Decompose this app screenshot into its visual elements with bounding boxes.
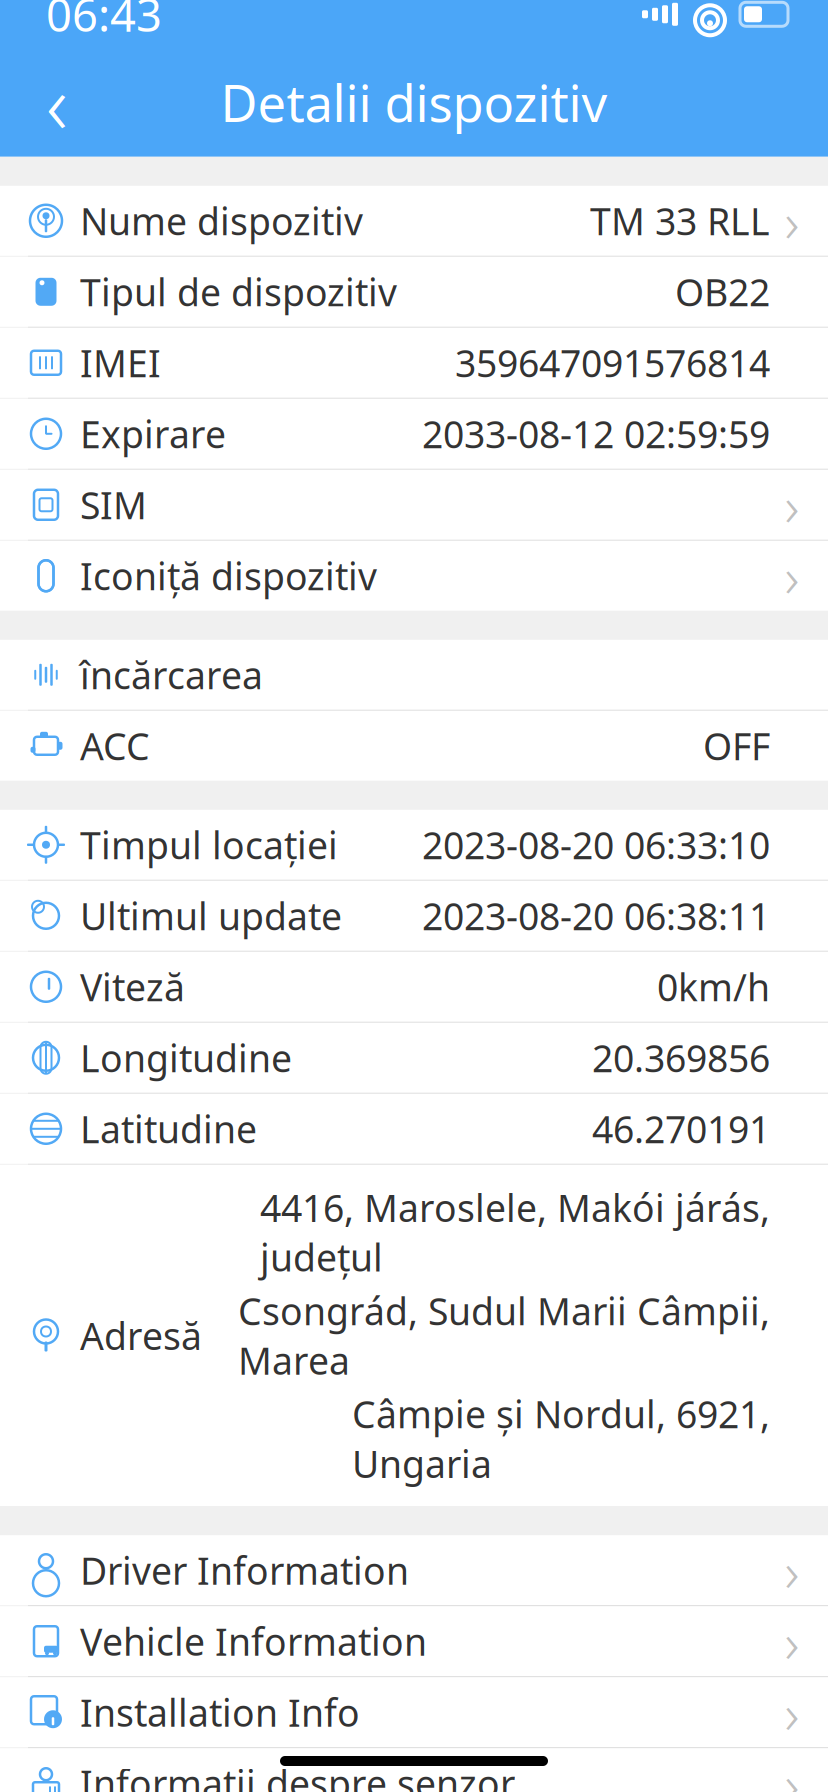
staticText: încărcarea — [80, 650, 263, 700]
button[interactable]: SIM — [0, 470, 828, 540]
staticText: 4416, Maroslele, Makói járás, județul — [260, 1183, 770, 1282]
staticText: Viteză — [80, 962, 185, 1012]
staticText: 2033-08-12 02:59:59 — [422, 409, 770, 459]
button[interactable]: Latitudine — [0, 1094, 828, 1164]
staticText: 2023-08-20 06:38:11 — [422, 891, 770, 941]
staticText: 0km/h — [657, 962, 770, 1012]
staticText: 359647091576814 — [455, 338, 770, 388]
staticText: OB22 — [675, 267, 770, 317]
button[interactable]: Ultimul update — [0, 881, 828, 951]
staticText: 46.270191 — [592, 1104, 770, 1154]
staticText: Vehicle Information — [80, 1616, 427, 1666]
staticText: Detalii dispozitiv — [220, 69, 607, 136]
staticText: ‹ — [46, 47, 68, 157]
staticText: OFF — [703, 721, 770, 771]
staticText: IMEI — [80, 338, 161, 388]
staticText: SIM — [80, 480, 147, 530]
staticText: ACC — [80, 721, 150, 771]
staticText: › — [784, 539, 799, 613]
button[interactable]: Viteză — [0, 952, 828, 1022]
staticText: Informații despre senzor — [80, 1758, 515, 1792]
staticText: Adresă — [80, 1311, 202, 1360]
staticText: Nume dispozitiv — [80, 196, 363, 246]
button[interactable]: Longitudine — [0, 1023, 828, 1093]
staticText: Timpul locației — [80, 820, 338, 870]
staticText: › — [784, 1533, 799, 1607]
staticText: Longitudine — [80, 1033, 292, 1083]
button[interactable]: încărcarea — [0, 640, 828, 710]
staticText: Csongrád, Sudul Marii Câmpii, Marea — [238, 1286, 770, 1385]
staticText: 06:43 — [46, 0, 162, 44]
staticText: › — [784, 184, 799, 258]
button[interactable]: Tipul de dispozitiv — [0, 257, 828, 327]
button[interactable]: Back — [22, 67, 92, 137]
button[interactable]: Adresă — [0, 1165, 828, 1506]
button[interactable]: Expirare — [0, 399, 828, 469]
staticText: 20.369856 — [592, 1033, 770, 1083]
staticText: › — [784, 1746, 799, 1792]
button[interactable]: Timpul locației — [0, 810, 828, 880]
staticText: 2023-08-20 06:33:10 — [422, 820, 770, 870]
button[interactable]: Installation Info — [0, 1677, 828, 1747]
staticText: Tipul de dispozitiv — [80, 267, 397, 317]
staticText: Expirare — [80, 409, 226, 459]
button[interactable]: Iconiță dispozitiv — [0, 541, 828, 611]
button[interactable]: Nume dispozitiv — [0, 186, 828, 256]
button[interactable]: IMEI — [0, 328, 828, 398]
button[interactable]: Vehicle Information — [0, 1606, 828, 1676]
staticText: › — [784, 1675, 799, 1749]
staticText: › — [784, 468, 799, 542]
staticText: Ultimul update — [80, 891, 342, 941]
staticText: TM 33 RLL — [590, 196, 770, 246]
button[interactable]: Informații despre senzor — [0, 1748, 828, 1792]
button[interactable]: ACC — [0, 711, 828, 781]
staticText: Installation Info — [80, 1687, 360, 1737]
staticText: Latitudine — [80, 1104, 257, 1154]
button[interactable]: Driver Information — [0, 1535, 828, 1605]
staticText: › — [784, 1604, 799, 1678]
staticText: Driver Information — [80, 1545, 409, 1595]
staticText: Iconiță dispozitiv — [80, 551, 377, 601]
staticText: Câmpie și Nordul, 6921, Ungaria — [352, 1389, 770, 1488]
